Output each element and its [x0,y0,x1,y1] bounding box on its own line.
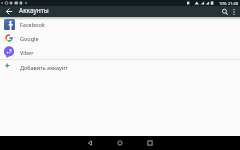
staticText: 10% 21:38 [219,1,239,6]
button[interactable]: Viber [0,45,240,59]
button[interactable] [4,7,13,16]
staticText: Viber [20,49,34,56]
button[interactable] [230,7,240,17]
staticText: Аккаунты [19,6,49,15]
button[interactable]: Google [0,31,240,45]
button[interactable] [146,139,154,147]
button[interactable] [86,139,94,147]
button[interactable] [220,7,230,17]
button[interactable]: Добавить аккаунт [0,60,240,74]
staticText: Facebook [20,21,45,28]
staticText: Добавить аккаунт [20,64,68,71]
staticText: Google [20,35,39,42]
button[interactable] [116,139,124,147]
button[interactable]: Facebook [0,17,240,31]
